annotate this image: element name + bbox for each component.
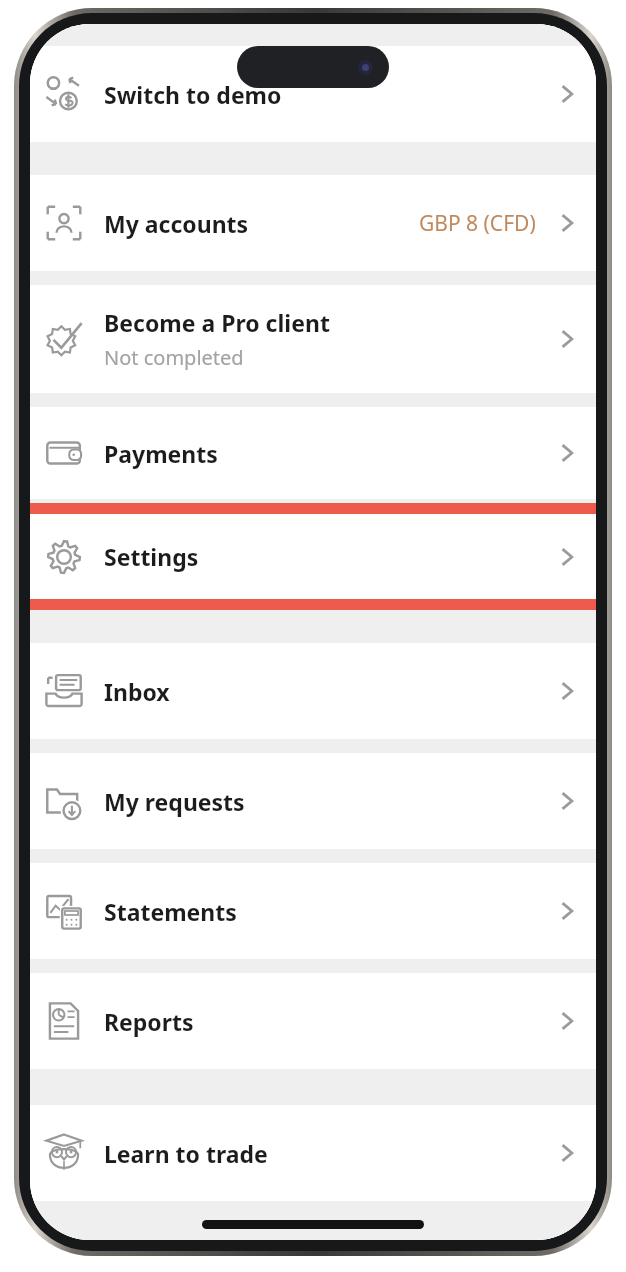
button[interactable]: Settings [30, 514, 596, 599]
other: Reports [42, 999, 86, 1043]
staticText: GBP 8 (CFD) [419, 209, 536, 238]
staticText: Switch to demo [104, 79, 282, 110]
staticText: Inbox [104, 676, 170, 707]
button[interactable]: Payments [30, 407, 596, 499]
other: Statements [42, 889, 86, 933]
staticText: Payments [104, 438, 218, 469]
staticText: Reports [104, 1006, 194, 1037]
staticText: Statements [104, 896, 237, 927]
other: Inbox [42, 669, 86, 713]
staticText: Not completed [104, 344, 244, 371]
button[interactable]: My accounts [30, 175, 596, 271]
staticText: My accounts [104, 208, 249, 239]
other: Settings [42, 535, 86, 579]
staticText: Become a Pro client [104, 307, 330, 338]
button[interactable]: Statements [30, 863, 596, 959]
staticText: Learn to trade [104, 1138, 268, 1169]
staticText: My requests [104, 786, 245, 817]
staticText: Settings [104, 541, 199, 572]
button[interactable]: Learn to trade [30, 1105, 596, 1201]
button[interactable]: Become a Pro client [30, 285, 596, 393]
other: Switch to demo [42, 72, 86, 116]
other: Learn to trade [42, 1131, 86, 1175]
button[interactable]: Inbox [30, 643, 596, 739]
other: Become a Pro client [42, 317, 86, 361]
other: Payments [42, 431, 86, 475]
button[interactable]: Switch to demo [30, 46, 596, 142]
other: My accounts [42, 201, 86, 245]
button[interactable]: Reports [30, 973, 596, 1069]
button[interactable]: My requests [30, 753, 596, 849]
other: My requests [42, 779, 86, 823]
